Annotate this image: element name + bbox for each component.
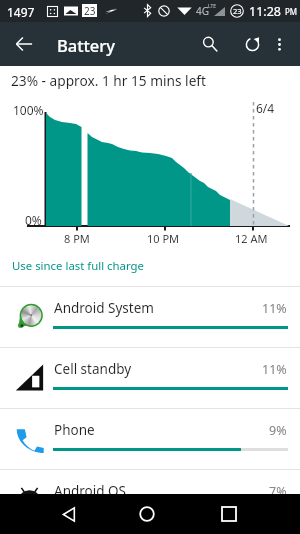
staticText: Phone (54, 421, 95, 439)
staticText: 1497 (7, 4, 35, 20)
staticText: 23 (84, 4, 96, 17)
staticText: Android OS (54, 482, 126, 500)
staticText: 8 PM (64, 231, 90, 246)
button[interactable]: Home (127, 494, 167, 534)
button[interactable]: Android OS (0, 470, 300, 531)
staticText: Use since last full charge (12, 258, 145, 274)
staticText: 100% (13, 102, 44, 118)
button[interactable]: Refresh (230, 22, 274, 66)
staticText: Android System (54, 299, 154, 317)
button[interactable]: Recent apps (209, 494, 249, 534)
staticText: 6/4 (256, 100, 275, 116)
staticText: 23 (233, 6, 242, 16)
staticText: 7% (269, 483, 287, 500)
button[interactable]: Android System (0, 287, 300, 348)
button[interactable]: Use since last full charge (0, 260, 300, 287)
staticText: Cell standby (54, 360, 132, 378)
button[interactable]: More options (262, 27, 296, 61)
staticText: 11:28 (249, 3, 281, 20)
staticText: LTE (208, 3, 217, 10)
staticText: 23% - approx. 1 hr 15 mins left (11, 71, 207, 89)
button[interactable]: Phone (0, 409, 300, 470)
staticText: 4G (196, 4, 209, 18)
staticText: 0% (25, 212, 42, 228)
button[interactable]: Back (2, 22, 46, 66)
button[interactable]: Back (49, 494, 89, 534)
staticText: 11% (262, 361, 287, 378)
staticText: 10 PM (147, 231, 180, 246)
staticText: 11% (262, 300, 287, 317)
staticText: Battery (57, 34, 116, 56)
staticText: 9% (269, 422, 287, 439)
staticText: PM (285, 6, 298, 17)
staticText: 12 AM (235, 231, 268, 246)
button[interactable]: Search (188, 22, 232, 66)
button[interactable]: Cell standby (0, 348, 300, 409)
